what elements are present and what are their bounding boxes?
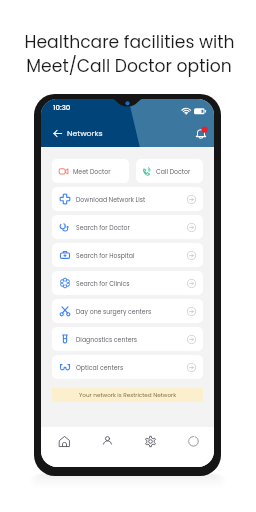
staticText: Meet Doctor [73,167,111,176]
button[interactable]: Diagnostics centers [52,327,203,351]
button[interactable]: Meet Doctor [52,159,129,183]
button[interactable]: Home [41,427,85,461]
button[interactable]: Back [51,126,105,141]
staticText: Networks [67,128,103,139]
staticText: Search for Clinics [76,279,187,288]
button[interactable]: Notifications [195,127,207,139]
button[interactable]: Call Doctor [136,159,203,183]
button[interactable]: Refresh [171,427,214,461]
button[interactable]: Download Network List [52,187,203,211]
staticText: Day one surgery centers [76,307,187,316]
staticText: Download Network List [76,195,187,204]
button[interactable]: Search for Clinics [52,271,203,295]
staticText: Call Doctor [156,167,191,176]
staticText: 10:30 [53,103,71,113]
staticText: Search for Doctor [76,223,187,232]
button[interactable]: Day one surgery centers [52,299,203,323]
staticText: Search for Hospital [76,251,187,260]
staticText: Your network is Restricted Network [79,391,177,399]
staticText: Healthcare facilities with [24,30,235,54]
button[interactable]: Search for Hospital [52,243,203,267]
button[interactable]: Search for Doctor [52,215,203,239]
staticText: Meet/Call Doctor option [26,54,232,78]
button[interactable]: Optical centers [52,355,203,379]
staticText: Optical centers [76,363,187,372]
button[interactable]: Profile [85,427,128,461]
button[interactable]: Settings [128,427,171,461]
staticText: Diagnostics centers [76,335,187,344]
